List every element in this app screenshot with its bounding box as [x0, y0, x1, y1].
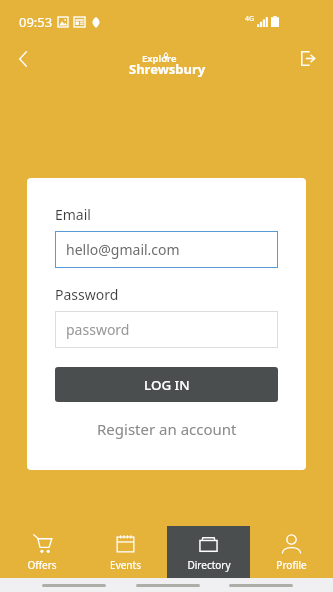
- staticText: hello@gmail.com: [66, 240, 180, 259]
- staticText: Directory: [187, 558, 231, 572]
- staticText: 4G: [245, 14, 255, 24]
- button[interactable]: Profile: [250, 526, 333, 578]
- staticText: Register an account: [97, 419, 237, 439]
- staticText: password: [66, 320, 130, 339]
- button[interactable]: LOG IN: [55, 367, 278, 402]
- staticText: Events: [110, 558, 141, 572]
- staticText: Shrewsbury: [129, 60, 206, 78]
- staticText: Explore: [142, 52, 177, 65]
- staticText: Password: [55, 285, 119, 304]
- button[interactable]: Register an account: [55, 417, 278, 441]
- staticText: LOG IN: [144, 376, 190, 394]
- button[interactable]: Directory: [167, 526, 250, 578]
- button[interactable]: Log out: [294, 44, 322, 72]
- staticText: Offers: [27, 558, 57, 572]
- staticText: Profile: [276, 558, 307, 572]
- staticText: 09:53: [19, 13, 53, 31]
- button[interactable]: Back: [9, 44, 37, 72]
- button[interactable]: Offers: [0, 526, 84, 578]
- button[interactable]: hello@gmail.com: [55, 231, 278, 268]
- staticText: Email: [55, 205, 91, 224]
- button[interactable]: password: [55, 311, 278, 348]
- button[interactable]: Events: [84, 526, 167, 578]
